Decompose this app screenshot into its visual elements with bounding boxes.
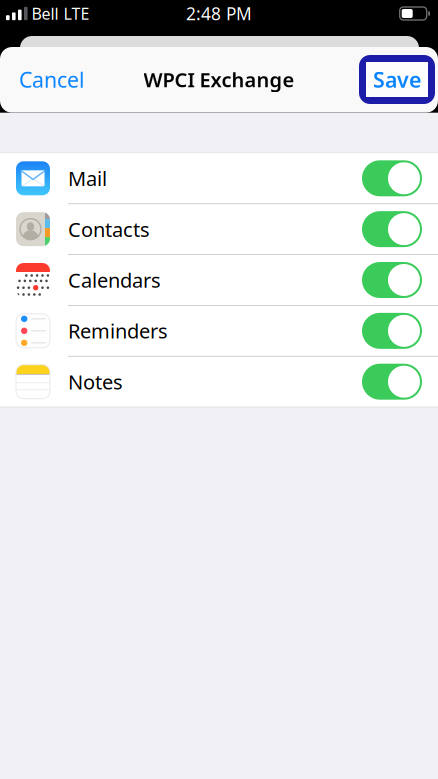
staticText: 2:48 PM — [186, 2, 252, 25]
staticText: Bell — [32, 3, 59, 24]
staticText: Reminders — [68, 318, 168, 344]
staticText: WPCI Exchange — [143, 66, 294, 93]
button[interactable]: Calendars — [0, 255, 438, 305]
staticText: Notes — [68, 368, 123, 395]
button[interactable]: Mail — [0, 153, 438, 203]
button[interactable]: Contacts — [0, 204, 438, 254]
staticText: Calendars — [68, 267, 161, 293]
button[interactable]: Cancel — [0, 54, 104, 105]
button[interactable]: Notes — [0, 357, 438, 407]
staticText: Contacts — [68, 216, 150, 242]
staticText: Mail — [68, 165, 107, 192]
staticText: LTE — [64, 3, 90, 24]
button[interactable]: Reminders — [0, 306, 438, 356]
staticText: Cancel — [19, 65, 85, 94]
staticText: Save — [373, 65, 421, 94]
button[interactable]: Save — [359, 55, 438, 104]
